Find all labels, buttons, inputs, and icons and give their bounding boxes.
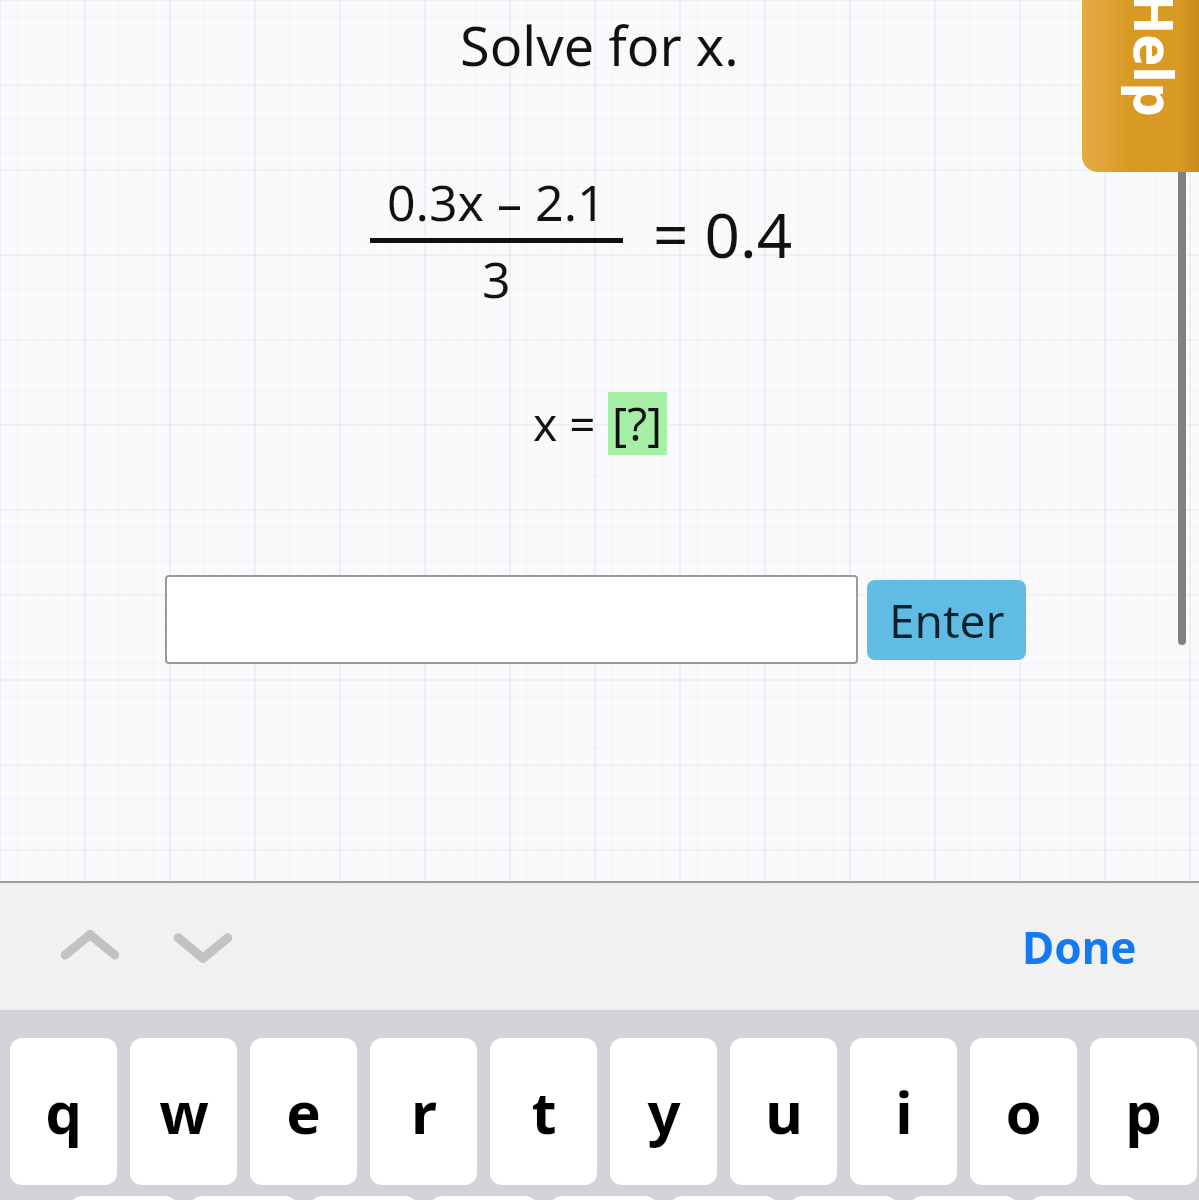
staticText: x = [533,392,608,455]
staticText: t [531,1072,557,1151]
staticText: Solve for x. [460,8,739,82]
button[interactable] [790,1196,897,1200]
staticText: i [895,1072,913,1151]
staticText: o [1005,1072,1042,1151]
button[interactable] [550,1196,657,1200]
button[interactable]: t [490,1038,597,1185]
staticText: u [765,1072,803,1151]
staticText: e [286,1072,321,1151]
button[interactable]: Answer input [165,575,858,664]
button[interactable] [310,1196,417,1200]
staticText: p [1125,1072,1162,1151]
button[interactable]: o [970,1038,1077,1185]
staticText: [?] [612,392,663,455]
staticText: 3 [482,245,511,313]
button[interactable]: p [1090,1038,1197,1185]
button[interactable]: q [10,1038,117,1185]
button[interactable]: u [730,1038,837,1185]
button[interactable]: Help [1082,0,1199,172]
staticText: q [45,1072,82,1151]
button[interactable]: i [850,1038,957,1185]
staticText: = 0.4 [653,192,793,276]
button[interactable]: y [610,1038,717,1185]
button[interactable] [910,1196,1017,1200]
button[interactable] [430,1196,537,1200]
button[interactable]: w [130,1038,237,1185]
button[interactable]: Previous field [48,905,132,989]
button[interactable]: Next field [161,905,245,989]
staticText: Enter [889,589,1005,652]
button[interactable] [1030,1196,1137,1200]
button[interactable] [70,1196,177,1200]
button[interactable] [670,1196,777,1200]
staticText: Help [1118,0,1192,117]
button[interactable]: r [370,1038,477,1185]
staticText: r [411,1072,437,1151]
button[interactable]: Enter [867,580,1026,660]
button[interactable]: Done [1010,907,1149,987]
button[interactable]: e [250,1038,357,1185]
staticText: 0.3x – 2.1 [387,168,606,236]
staticText: w [159,1072,209,1151]
staticText: Done [1022,917,1137,977]
staticText: y [647,1072,681,1151]
button[interactable] [190,1196,297,1200]
